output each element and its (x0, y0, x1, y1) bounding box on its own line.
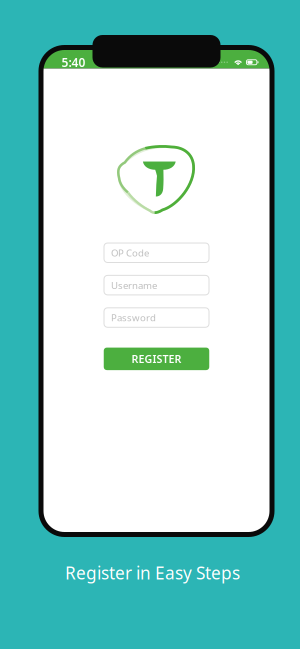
button[interactable]: Username (104, 275, 209, 295)
staticText: Register in Easy Steps (65, 561, 240, 584)
staticText: REGISTER (131, 352, 181, 366)
staticText: 5:40 (61, 54, 85, 70)
button[interactable]: Password (104, 308, 209, 327)
staticText: OP Code (111, 246, 149, 259)
button[interactable]: OP Code (104, 243, 209, 262)
staticText: Password (111, 311, 156, 324)
button[interactable]: REGISTER (104, 348, 209, 370)
staticText: Username (111, 279, 157, 292)
